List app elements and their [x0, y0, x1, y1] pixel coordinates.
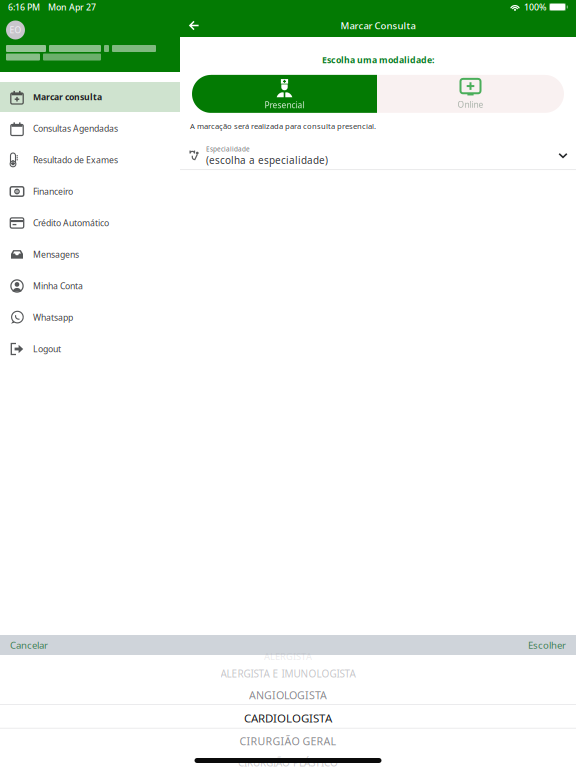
staticText: Escolha uma modalidade: [322, 54, 434, 66]
staticText: Crédito Automático [33, 217, 109, 229]
staticText: 100% [524, 1, 546, 13]
staticText: CIRURGIÃO PLÁSTICO [238, 756, 338, 768]
staticText: ALERGISTA [264, 650, 312, 663]
staticText: ALERGISTA E IMUNOLOGISTA [220, 667, 355, 680]
button[interactable]: Consultas Agendadas [0, 113, 180, 143]
button[interactable]: Crédito Automático [0, 208, 180, 238]
staticText: Cancelar [10, 638, 48, 652]
button[interactable]: Especialidade [180, 142, 576, 170]
button[interactable]: Whatsapp [0, 302, 180, 332]
staticText: Online [457, 99, 483, 110]
staticText: Financeiro [33, 186, 73, 197]
staticText: CARDIOLOGISTA [244, 710, 332, 726]
staticText: Mensagens [33, 249, 79, 260]
button[interactable]: Financeiro [0, 176, 180, 206]
staticText: Presencial [264, 99, 304, 111]
staticText: Escolher [528, 638, 566, 652]
staticText: Logout [33, 343, 61, 355]
staticText: 6:16 PM [8, 1, 40, 13]
staticText: Especialidade [206, 145, 250, 153]
staticText: A marcação será realizada para consulta … [190, 121, 376, 131]
staticText: Resultado de Exames [33, 154, 118, 166]
button[interactable]: Online [377, 75, 564, 113]
button[interactable]: Logout [0, 334, 180, 364]
button[interactable]: Minha Conta [0, 271, 180, 301]
button[interactable]: Mensagens [0, 239, 180, 269]
staticText: Mon Apr 27 [48, 1, 96, 13]
staticText: CIRURGIÃO GERAL [239, 734, 336, 748]
staticText: Consultas Agendadas [33, 123, 118, 134]
staticText: EO [9, 24, 21, 36]
button[interactable]: Cancelar [0, 635, 58, 655]
staticText: ANGIOLOGISTA [249, 688, 327, 702]
staticText: (escolha a especialidade) [206, 153, 328, 167]
button[interactable]: Marcar consulta [0, 82, 180, 112]
button[interactable]: Escolher [518, 635, 576, 655]
staticText: Marcar Consulta [340, 19, 415, 32]
staticText: Whatsapp [33, 312, 73, 323]
staticText: Minha Conta [33, 280, 83, 292]
button[interactable]: Back [180, 14, 217, 37]
button[interactable]: Resultado de Exames [0, 145, 180, 175]
staticText: Marcar consulta [33, 91, 102, 103]
button[interactable]: Presencial [192, 75, 377, 113]
